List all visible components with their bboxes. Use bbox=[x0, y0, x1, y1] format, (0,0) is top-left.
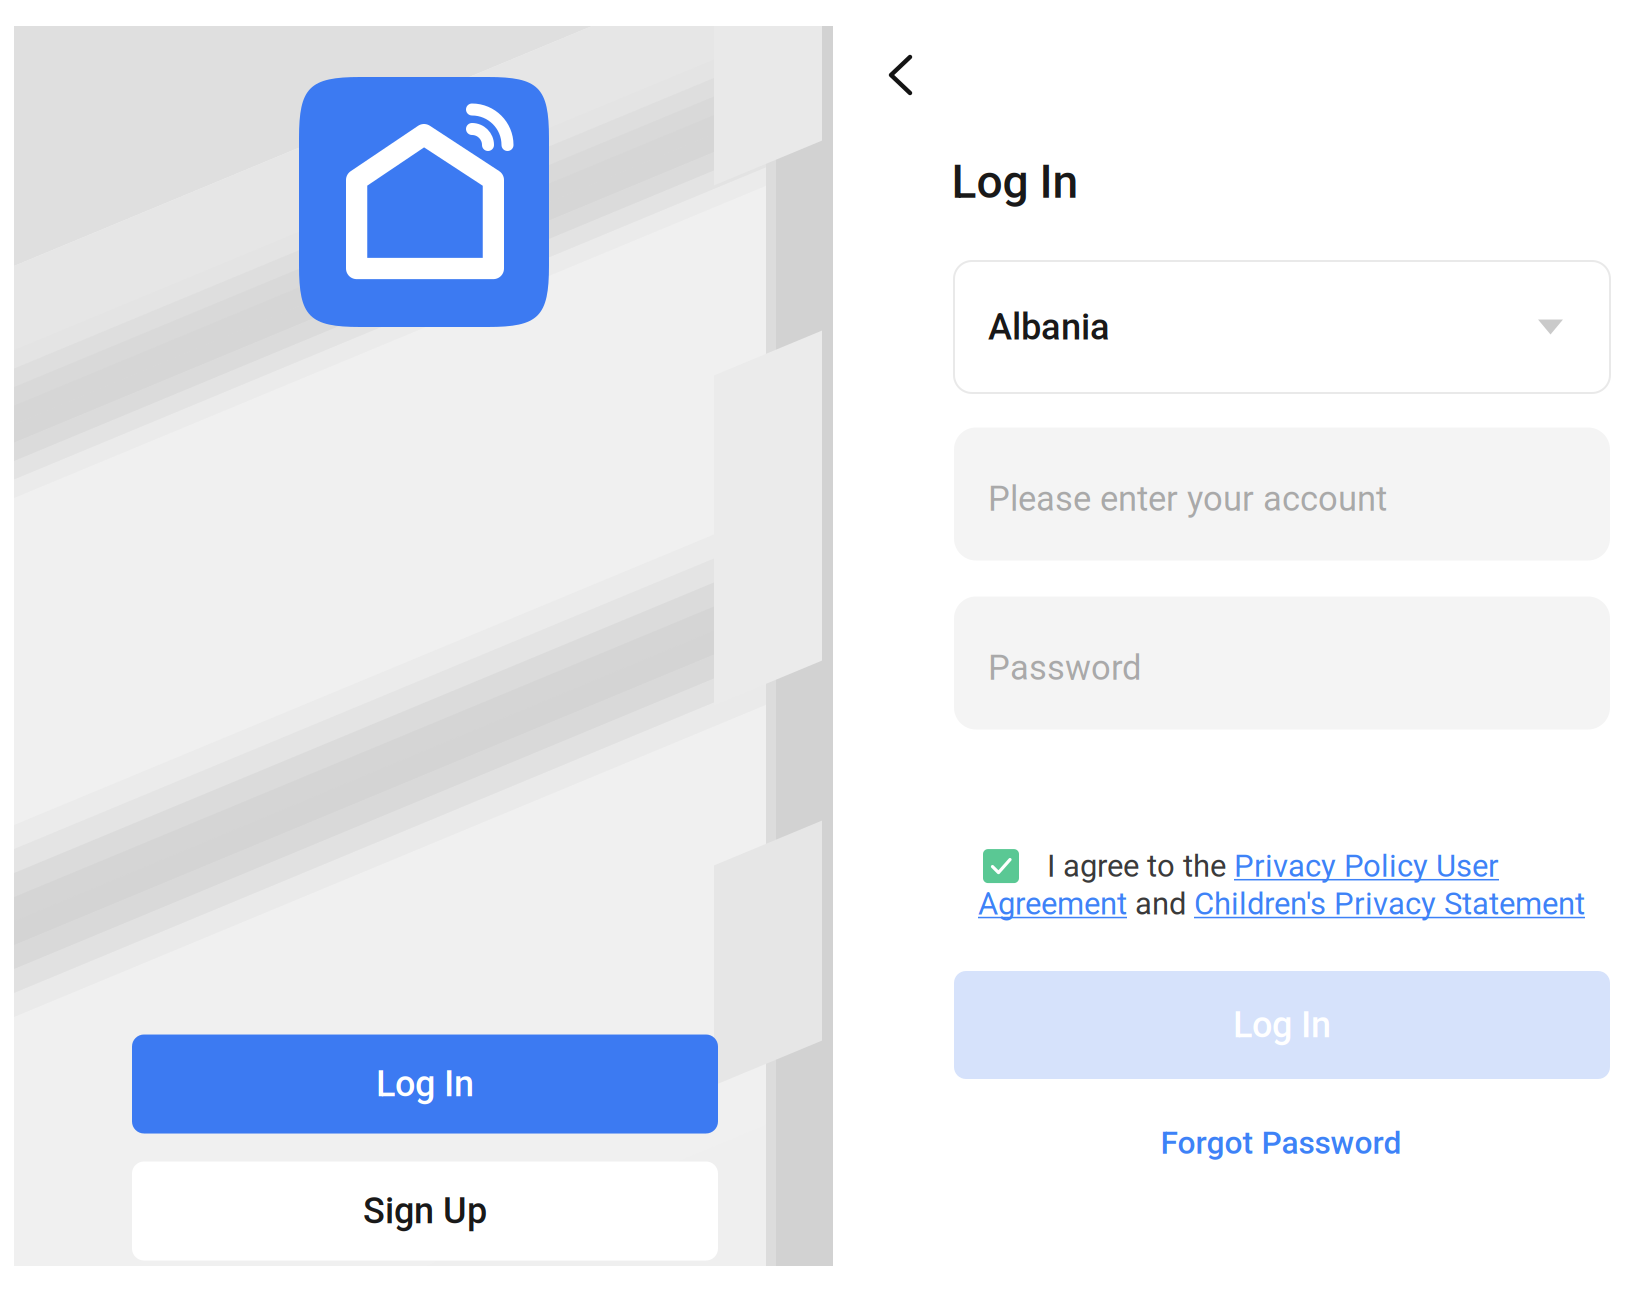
staticText: Agreement bbox=[978, 886, 1127, 922]
button[interactable]: Forgot Password bbox=[1131, 1115, 1431, 1171]
button[interactable]: Albania bbox=[954, 261, 1610, 393]
staticText: and bbox=[1127, 886, 1194, 922]
staticText: Sign Up bbox=[363, 1190, 487, 1232]
button[interactable]: Privacy Policy User bbox=[1234, 848, 1499, 884]
button[interactable]: Children's Privacy Statement bbox=[1194, 886, 1585, 922]
button[interactable]: Back bbox=[872, 53, 930, 97]
button[interactable]: Log In bbox=[132, 1034, 718, 1133]
staticText: Password bbox=[988, 648, 1141, 688]
staticText: I agree to the bbox=[1047, 848, 1234, 884]
staticText: Forgot Password bbox=[1160, 1124, 1401, 1162]
button[interactable]: Sign Up bbox=[132, 1161, 718, 1260]
staticText: Children's Privacy Statement bbox=[1194, 886, 1585, 922]
staticText: Log In bbox=[1233, 1004, 1331, 1046]
staticText: Log In bbox=[376, 1063, 474, 1105]
button[interactable]: Agreement bbox=[978, 886, 1127, 922]
button[interactable]: Agree to terms bbox=[983, 849, 1019, 883]
staticText: Please enter your account bbox=[988, 479, 1387, 519]
staticText: Albania bbox=[988, 306, 1110, 348]
staticText: Log In bbox=[951, 155, 1078, 209]
staticText: Privacy Policy User bbox=[1234, 848, 1499, 884]
button[interactable]: Log In bbox=[954, 971, 1610, 1079]
